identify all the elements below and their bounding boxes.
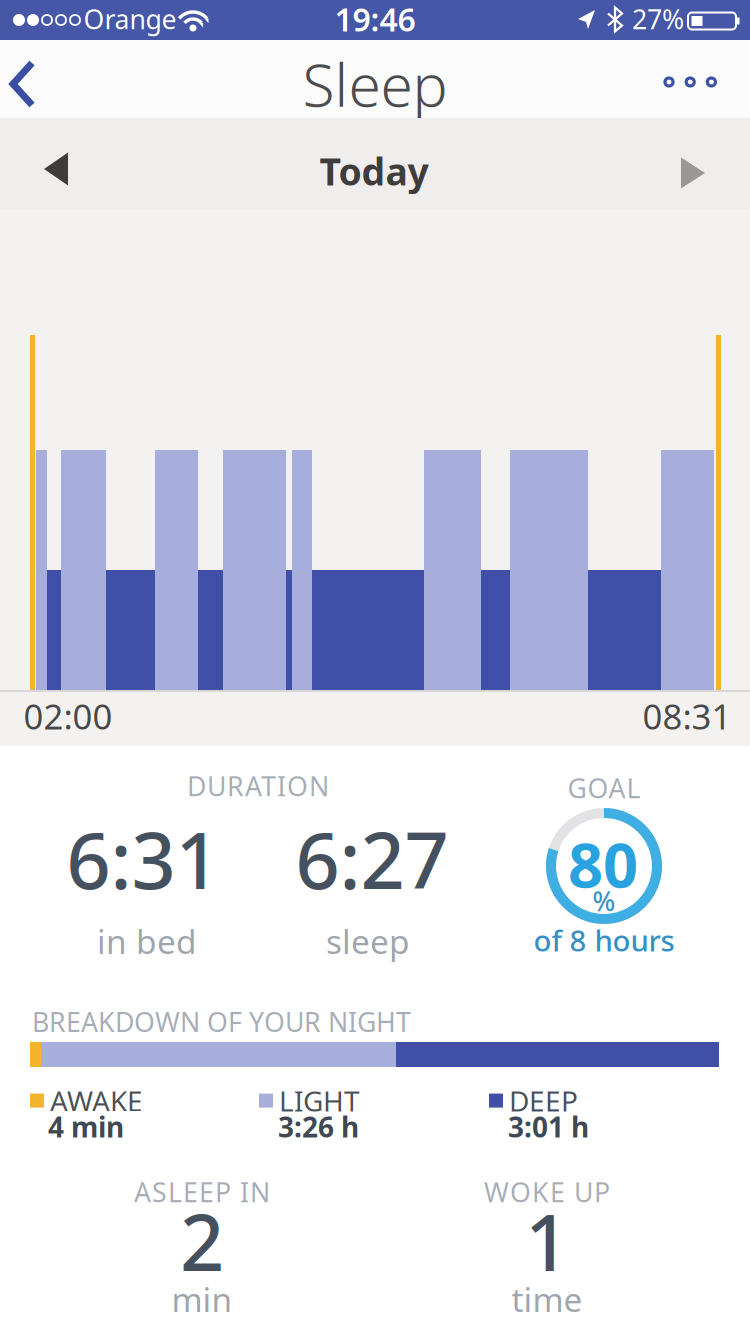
staticText: Orange bbox=[83, 1, 176, 37]
staticText: min bbox=[171, 1277, 232, 1321]
staticText: Sleep bbox=[302, 45, 447, 123]
staticText: DEEP bbox=[509, 1082, 578, 1119]
staticText: time bbox=[511, 1277, 582, 1321]
staticText: DURATION bbox=[187, 768, 329, 804]
button[interactable]: Next day bbox=[681, 157, 705, 188]
staticText: sleep bbox=[326, 919, 410, 963]
staticText: 02:00 bbox=[23, 693, 112, 739]
staticText: 3:26 h bbox=[278, 1108, 359, 1145]
staticText: 6:27 bbox=[295, 808, 448, 910]
staticText: Today bbox=[319, 146, 428, 196]
staticText: of 8 hours bbox=[533, 920, 674, 959]
staticText: GOAL bbox=[567, 770, 640, 806]
staticText: ASLEEP IN bbox=[134, 1174, 270, 1210]
staticText: 6:31 bbox=[66, 808, 219, 910]
staticText: 80 bbox=[568, 823, 638, 905]
button[interactable]: More options bbox=[658, 70, 722, 94]
staticText: BREAKDOWN OF YOUR NIGHT bbox=[32, 1004, 411, 1039]
staticText: AWAKE bbox=[50, 1082, 143, 1119]
staticText: WOKE UP bbox=[484, 1174, 610, 1210]
staticText: 2 bbox=[180, 1190, 224, 1292]
staticText: 3:01 h bbox=[508, 1108, 589, 1145]
staticText: 19:46 bbox=[334, 0, 415, 40]
staticText: 27% bbox=[632, 1, 684, 37]
staticText: LIGHT bbox=[279, 1082, 360, 1119]
button[interactable]: Back bbox=[1, 51, 57, 117]
staticText: % bbox=[592, 883, 615, 919]
staticText: 08:31 bbox=[642, 693, 731, 739]
button[interactable]: Previous day bbox=[44, 152, 68, 185]
staticText: in bed bbox=[97, 919, 197, 963]
staticText: 1 bbox=[525, 1190, 569, 1292]
staticText: 4 min bbox=[48, 1108, 124, 1145]
